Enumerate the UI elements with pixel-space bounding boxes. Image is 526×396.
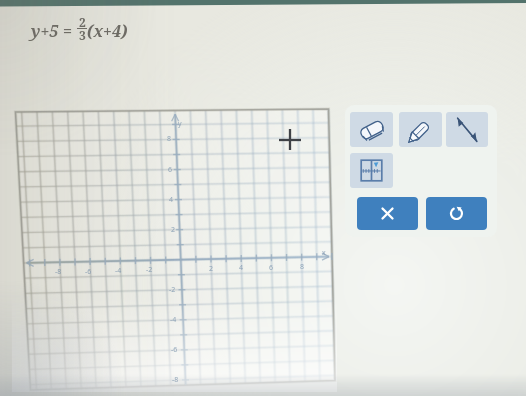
staticText: -4 bbox=[115, 266, 122, 276]
staticText: -2 bbox=[146, 265, 153, 275]
button[interactable]: Clear bbox=[357, 197, 418, 230]
staticText: y bbox=[178, 119, 182, 129]
button[interactable]: Undo bbox=[426, 197, 487, 230]
button[interactable]: Number line bbox=[350, 153, 393, 188]
staticText: y+5 bbox=[31, 20, 63, 42]
staticText: -4 bbox=[170, 315, 177, 325]
staticText: 2 bbox=[171, 225, 176, 235]
staticText: -8 bbox=[55, 267, 62, 277]
staticText: 6 bbox=[269, 263, 274, 273]
button[interactable]: Eraser bbox=[350, 112, 393, 147]
staticText: x bbox=[322, 248, 326, 258]
staticText: -6 bbox=[171, 345, 178, 355]
staticText: -8 bbox=[172, 375, 179, 385]
button[interactable]: Line tool bbox=[446, 112, 488, 147]
button[interactable]: Pencil bbox=[399, 112, 442, 147]
staticText: 4 bbox=[169, 195, 174, 205]
staticText: 3 bbox=[79, 27, 86, 43]
staticText: -2 bbox=[169, 285, 176, 295]
staticText: (x+4) bbox=[87, 20, 128, 42]
staticText: 2 bbox=[209, 264, 214, 274]
staticText: = bbox=[63, 20, 77, 42]
staticText: -6 bbox=[85, 267, 92, 277]
staticText: 2 bbox=[79, 14, 86, 30]
staticText: 4 bbox=[239, 263, 244, 273]
staticText: 6 bbox=[168, 165, 173, 175]
staticText: 8 bbox=[300, 262, 305, 272]
staticText: 8 bbox=[167, 134, 172, 144]
